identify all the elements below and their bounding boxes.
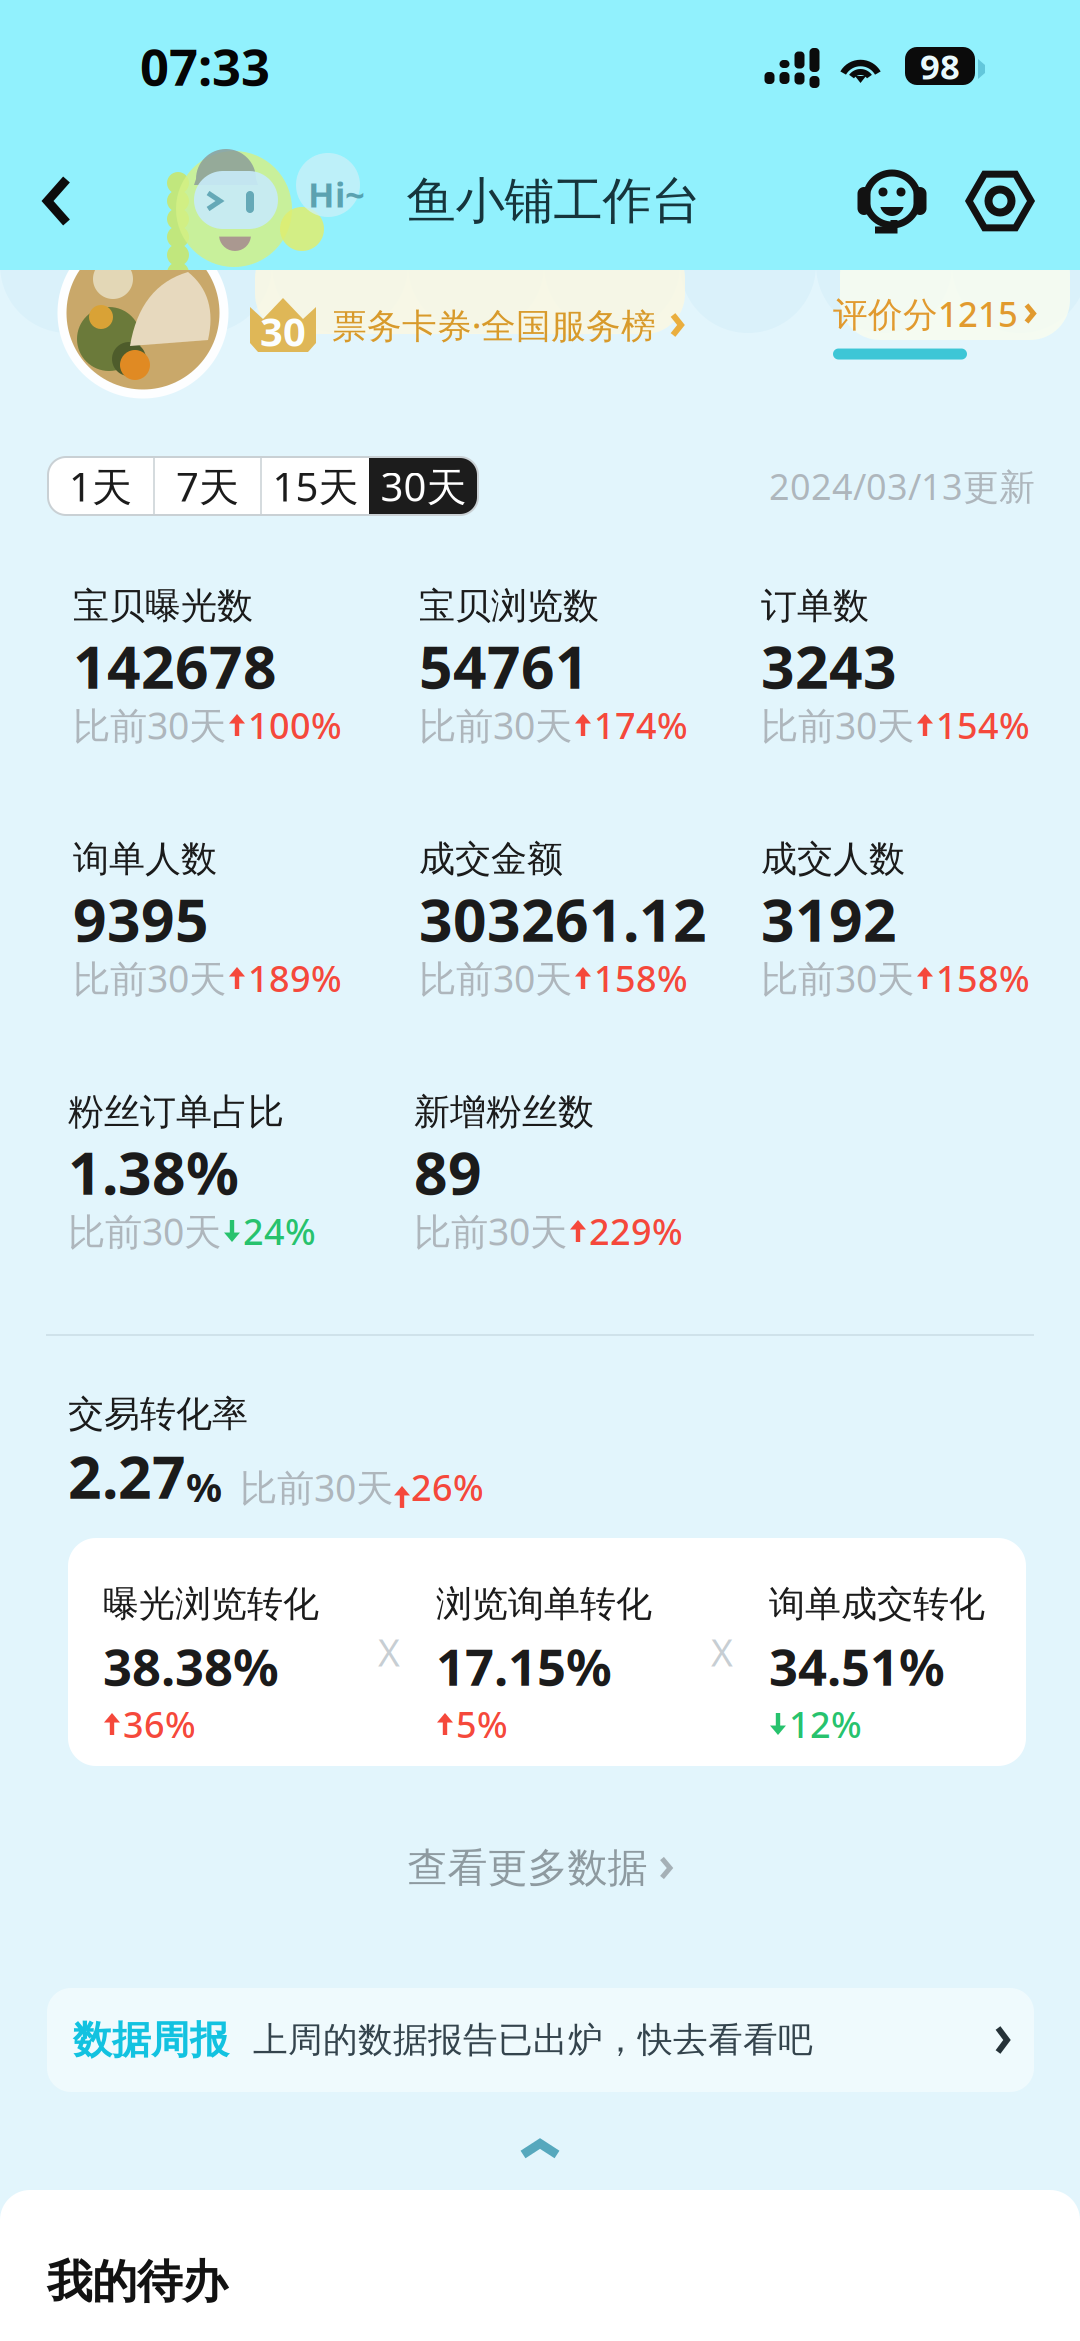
staticText: 303261.12 <box>419 880 707 958</box>
staticText: 9395 <box>73 880 209 958</box>
staticText: 交易转化率 <box>68 1392 248 1436</box>
staticText: 粉丝订单占比 <box>68 1090 284 1134</box>
staticText: 询单人数 <box>73 837 217 881</box>
staticText: 1天 <box>69 459 132 512</box>
staticText: 比前30天 <box>68 1206 221 1256</box>
button[interactable]: Collapse <box>0 2139 1080 2159</box>
staticText: 30天 <box>380 459 466 512</box>
staticText: 比前30天 <box>761 700 914 750</box>
staticText: 比前30天 <box>240 1462 393 1512</box>
staticText: % <box>186 1460 222 1513</box>
staticText: 曝光浏览转化 <box>103 1582 319 1626</box>
staticText: 上周的数据报告已出炉，快去看看吧 <box>253 2019 813 2061</box>
staticText: 查看更多数据 <box>407 1843 647 1892</box>
staticText: 2.27 <box>68 1437 186 1515</box>
staticText: 比前30天 <box>419 953 572 1003</box>
button[interactable]: 15天 <box>262 457 369 515</box>
staticText: X <box>711 1627 733 1677</box>
staticText: 89 <box>414 1133 482 1211</box>
staticText: 142678 <box>73 627 277 705</box>
staticText: 比前30天 <box>761 953 914 1003</box>
staticText: 比前30天 <box>419 700 572 750</box>
staticText: 38.38% <box>103 1632 279 1700</box>
staticText: 30 <box>260 304 306 357</box>
button[interactable]: 查看更多数据 <box>0 1841 1080 1895</box>
staticText: 1.38% <box>68 1133 239 1211</box>
staticText: 宝贝浏览数 <box>419 584 599 628</box>
staticText: 98 <box>920 43 960 89</box>
staticText: 比前30天 <box>73 700 226 750</box>
button[interactable]: 数据周报 <box>0 1988 1080 2092</box>
staticText: 154% <box>936 701 1030 749</box>
button[interactable]: 7天 <box>155 457 260 515</box>
staticText: 54761 <box>419 627 589 705</box>
staticText: 票务卡券·全国服务榜 <box>332 302 656 348</box>
staticText: 24% <box>243 1207 316 1255</box>
staticText: 比前30天 <box>73 953 226 1003</box>
button[interactable]: 30天 <box>369 457 478 515</box>
staticText: Hi~ <box>308 171 365 217</box>
staticText: 17.15% <box>436 1632 612 1700</box>
staticText: 12% <box>789 1700 862 1748</box>
staticText: 5% <box>456 1700 508 1748</box>
button[interactable]: 1天 <box>48 457 153 515</box>
staticText: 鱼小铺工作台 <box>406 171 700 231</box>
staticText: 174% <box>594 701 688 749</box>
staticText: 3192 <box>761 880 897 958</box>
staticText: 7天 <box>176 459 239 512</box>
staticText: 浏览询单转化 <box>436 1582 652 1626</box>
staticText: 15天 <box>272 459 358 512</box>
staticText: 宝贝曝光数 <box>73 584 253 628</box>
staticText: 07:33 <box>140 32 270 100</box>
staticText: 36% <box>123 1700 196 1748</box>
staticText: 100% <box>248 701 342 749</box>
staticText: 26% <box>411 1463 484 1511</box>
staticText: 158% <box>936 954 1030 1002</box>
staticText: 评价分1215 <box>833 290 1018 336</box>
staticText: 数据周报 <box>73 2016 229 2064</box>
button[interactable]: Customer service <box>852 163 928 239</box>
staticText: 成交人数 <box>761 837 905 881</box>
staticText: 成交金额 <box>419 837 563 881</box>
staticText: 158% <box>594 954 688 1002</box>
staticText: 34.51% <box>769 1632 945 1700</box>
staticText: 询单成交转化 <box>769 1582 985 1626</box>
staticText: 3243 <box>761 627 897 705</box>
staticText: X <box>378 1627 400 1677</box>
staticText: 2024/03/13更新 <box>769 462 1035 510</box>
staticText: 我的待办 <box>47 2254 227 2310</box>
staticText: 189% <box>248 954 342 1002</box>
staticText: 229% <box>589 1207 683 1255</box>
staticText: 比前30天 <box>414 1206 567 1256</box>
button[interactable]: Settings <box>928 163 1038 239</box>
staticText: 订单数 <box>761 584 869 628</box>
staticText: 新增粉丝数 <box>414 1090 594 1134</box>
button[interactable]: Back <box>43 146 255 256</box>
